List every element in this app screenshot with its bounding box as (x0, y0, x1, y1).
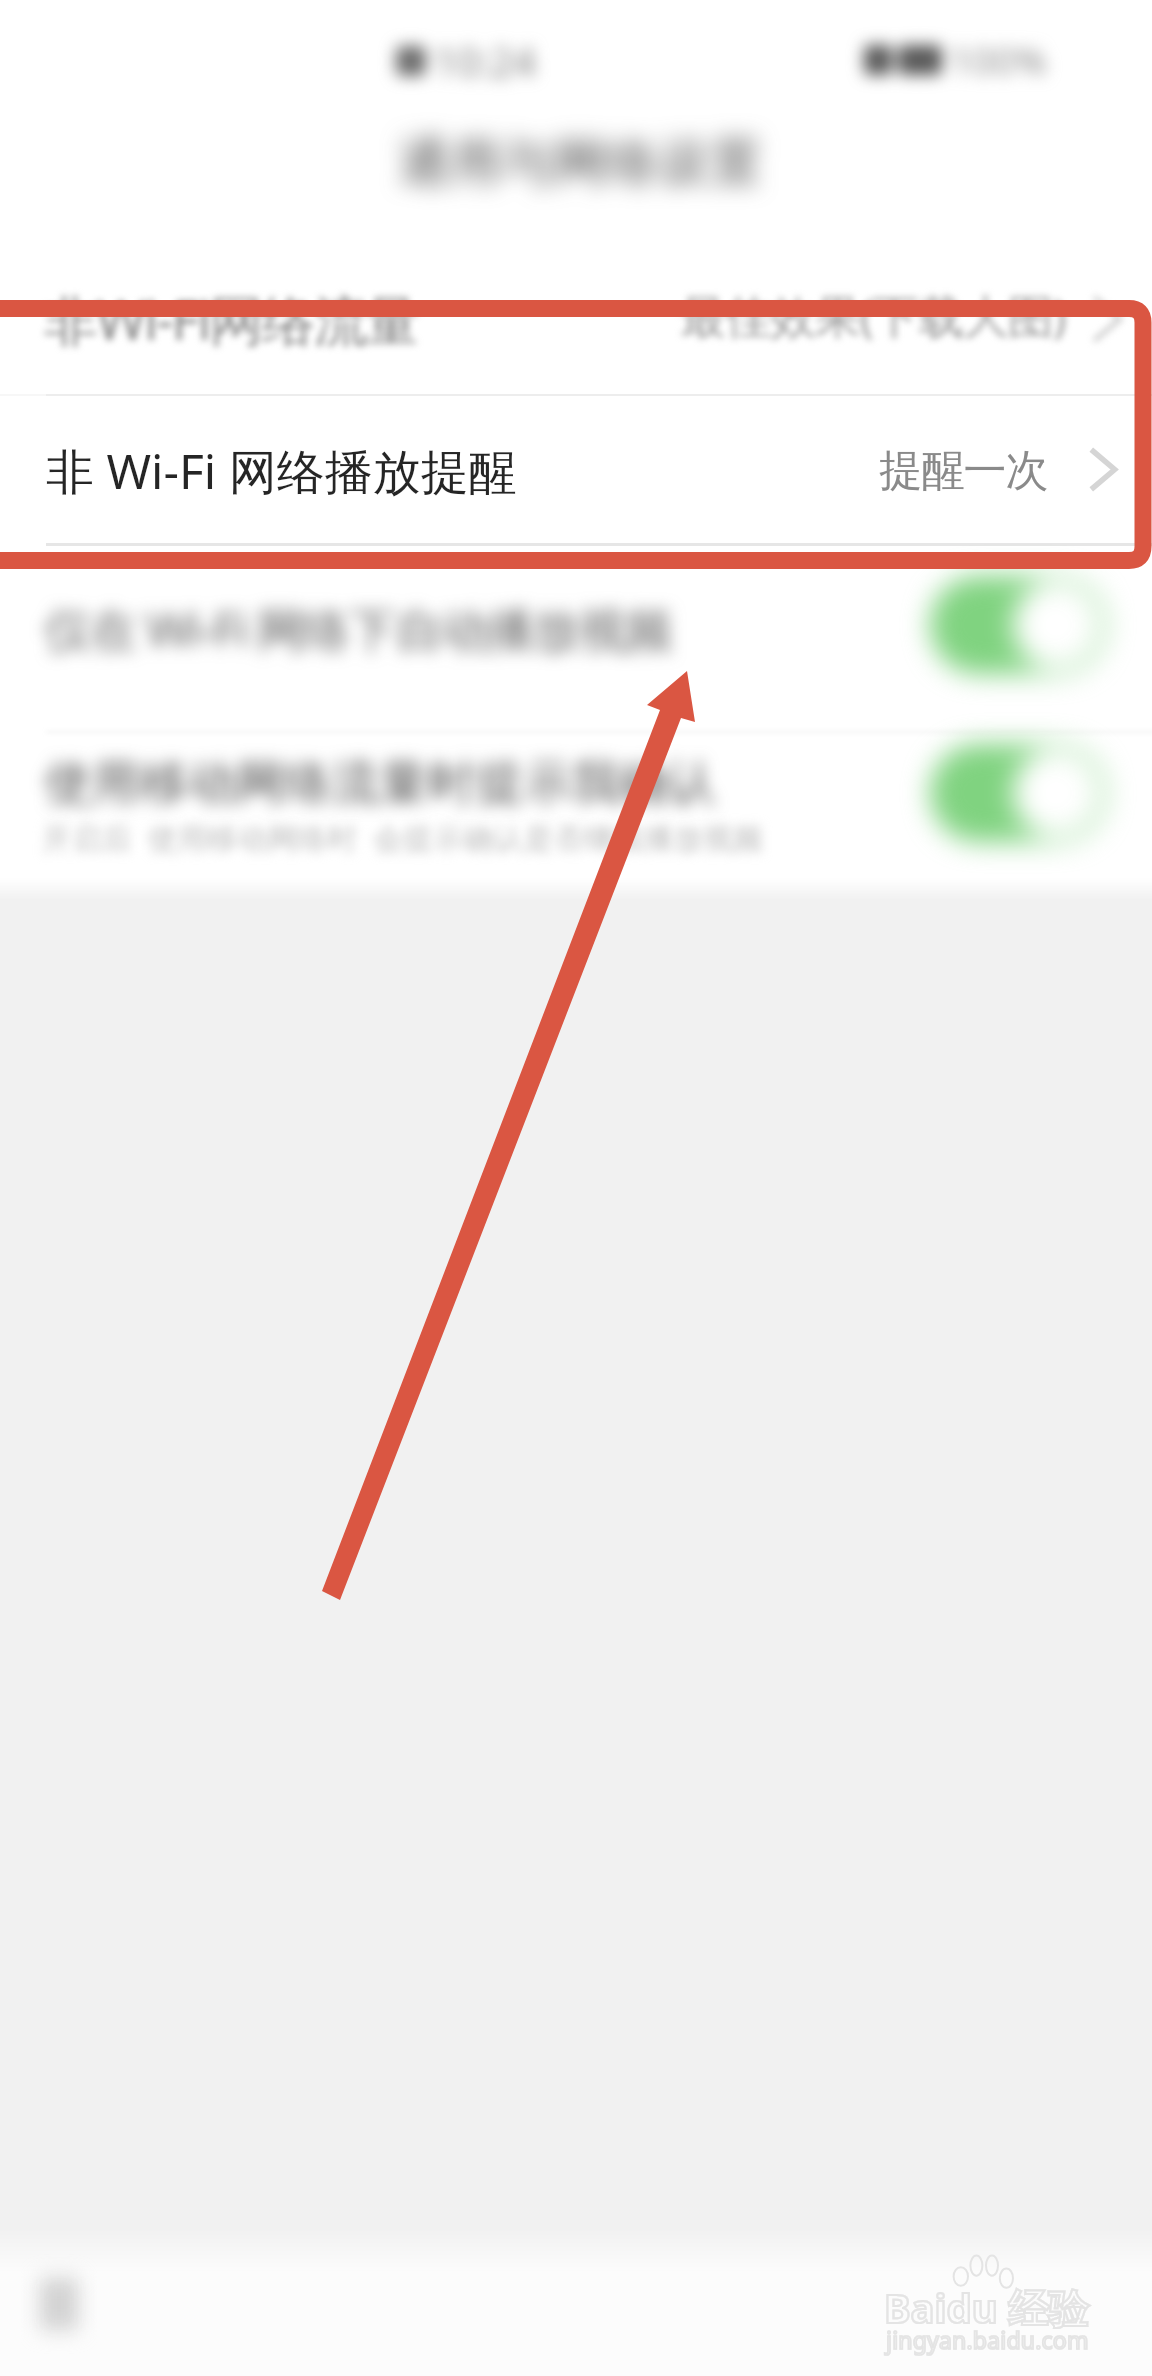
staticText: 使用移动网络流量时提示我确认 (44, 753, 716, 813)
button[interactable]: 非 Wi-Fi 网络播放提醒 (0, 396, 1152, 544)
button[interactable]: 使用移动网络流量时提示我确认 (0, 733, 1152, 890)
staticText: jingyan.baidu.com (886, 2324, 1089, 2355)
button[interactable]: Confirm before using mobile data (930, 744, 1106, 842)
button[interactable]: 仅在 Wi-Fi 网络下自动播放视频 (0, 546, 1152, 732)
staticText: 非 Wi-Fi 网络播放提醒 (46, 438, 517, 504)
staticText: 仅在 Wi-Fi 网络下自动播放视频 (44, 596, 671, 662)
staticText: 非Wi-Fi网络流量 (44, 282, 418, 356)
staticText: 100% (950, 34, 1047, 86)
button[interactable]: Auto-play videos only on Wi-Fi (930, 576, 1106, 674)
staticText: 最佳效果(下载大图) (680, 284, 1066, 347)
staticText: 10:24 (434, 34, 537, 88)
staticText: Baidu 经验 (884, 2280, 1089, 2335)
button[interactable]: 非Wi-Fi网络流量 (0, 246, 1152, 394)
staticText: 通用与网络设置 (398, 130, 762, 196)
staticText: 开启后 使用移动网络时 会提示确认是否继续播放视频 (42, 817, 764, 858)
staticText: 提醒一次 (880, 444, 1048, 498)
